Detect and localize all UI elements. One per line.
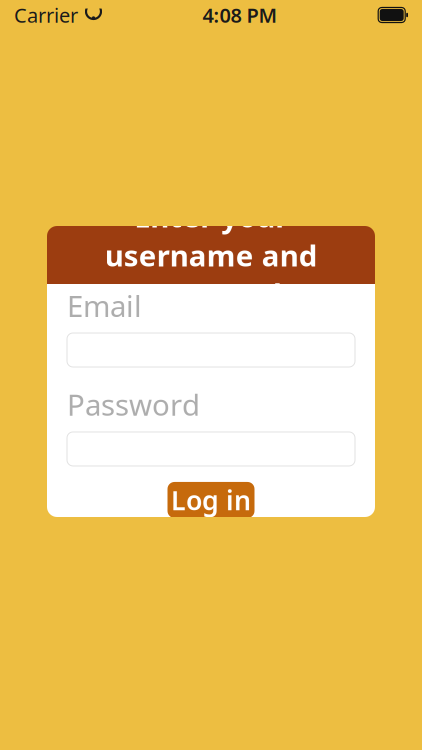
staticText: Log in bbox=[171, 482, 251, 518]
staticText: Email bbox=[67, 286, 142, 325]
button[interactable]: Log in bbox=[167, 482, 254, 518]
staticText: Carrier bbox=[14, 2, 78, 28]
staticText: Enter your username and password bbox=[104, 197, 317, 313]
staticText: Password bbox=[67, 385, 200, 424]
staticText: 4:08 PM bbox=[203, 2, 278, 28]
